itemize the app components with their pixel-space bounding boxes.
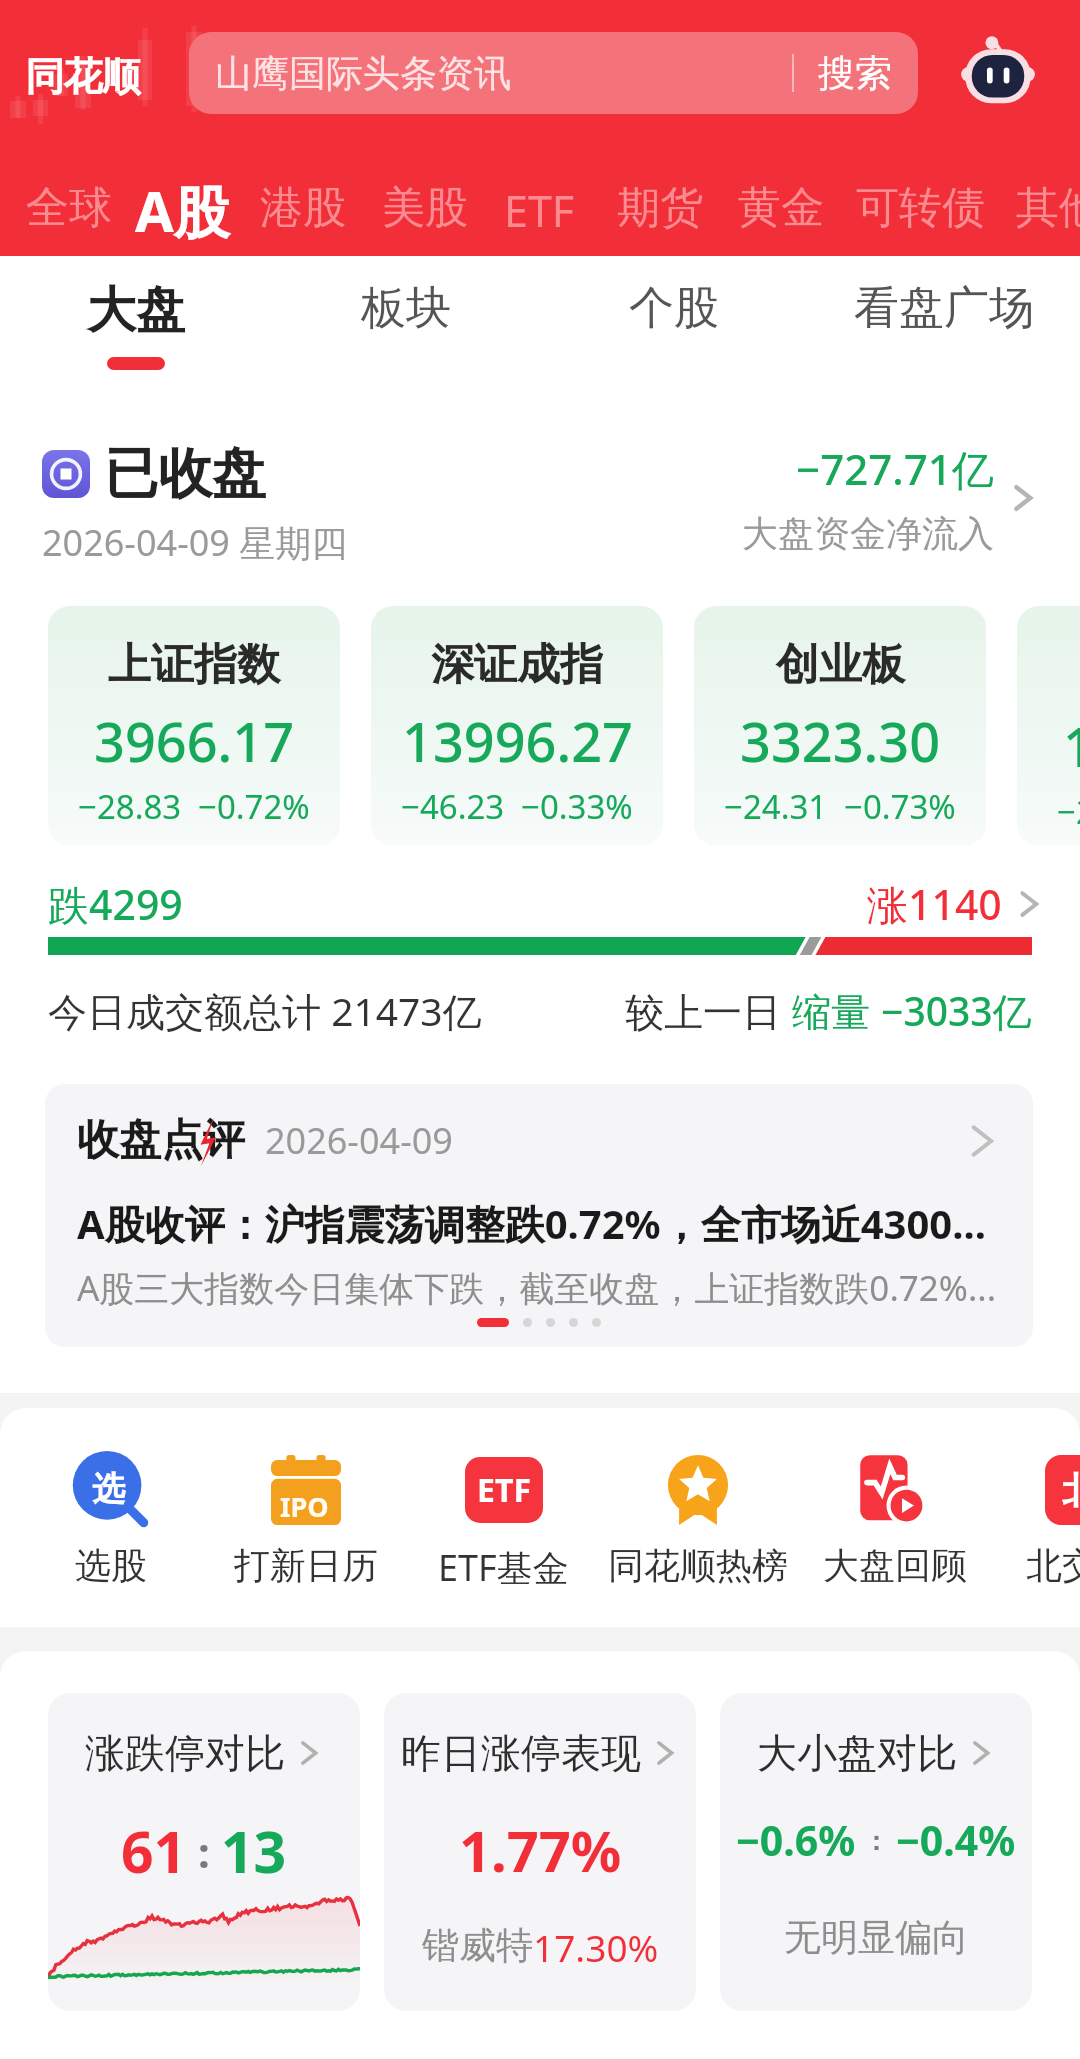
staticText: 大小盘对比: [757, 1728, 957, 1778]
staticText: ETF基金: [438, 1543, 569, 1592]
staticText: 2026-04-09: [265, 1116, 453, 1165]
staticText: −727.71亿: [796, 440, 994, 497]
staticText: 1288.32: [1063, 709, 1080, 783]
button[interactable]: 港股: [260, 181, 346, 235]
staticText: 缩量: [792, 984, 881, 1037]
staticText: A股: [135, 172, 230, 248]
button[interactable]: 大盘: [87, 280, 185, 370]
button[interactable]: 其他: [1016, 181, 1080, 235]
staticText: 同花顺: [26, 52, 140, 101]
staticText: 61: [121, 1812, 187, 1890]
staticText: 北交所: [1026, 1543, 1080, 1588]
button[interactable]: 上证指数: [48, 606, 340, 846]
button[interactable]: 大盘回顾: [785, 1451, 1005, 1588]
staticText: 板块: [361, 280, 451, 337]
button[interactable]: ETF: [504, 181, 575, 240]
button[interactable]: 板块: [361, 280, 451, 337]
button[interactable]: 选: [1, 1451, 221, 1588]
staticText: 跌4299: [48, 876, 183, 932]
staticText: 17.30%: [533, 1922, 659, 1972]
staticText: 北: [1062, 1468, 1080, 1513]
staticText: A股收评：沪指震荡调整跌0.72%，全市场近4300...: [77, 1196, 986, 1251]
staticText: −0.33%: [521, 784, 633, 829]
staticText: −24.31: [724, 784, 828, 829]
button[interactable]: 跌4299: [48, 876, 1044, 932]
staticText: 昨日涨停表现: [401, 1728, 641, 1778]
staticText: 同花顺热榜: [608, 1543, 788, 1588]
button[interactable]: AI assistant: [960, 34, 1036, 110]
button[interactable]: 黄金: [738, 181, 824, 235]
button[interactable]: 山鹰国际头条资讯: [189, 32, 918, 114]
staticText: 1.77%: [459, 1812, 622, 1888]
staticText: −2.85: [1057, 789, 1080, 834]
staticText: 13: [221, 1812, 287, 1890]
staticText: 大盘资金净流入: [742, 511, 994, 556]
staticText: 打新日历: [234, 1543, 378, 1588]
staticText: −28.83: [78, 784, 182, 829]
staticText: 搜索: [818, 50, 892, 97]
button[interactable]: IPO: [196, 1451, 416, 1588]
staticText: A股三大指数今日集体下跌，截至收盘，上证指数跌0.72%...: [77, 1264, 997, 1312]
staticText: ETF: [477, 1468, 531, 1512]
button[interactable]: 全球: [26, 181, 112, 235]
staticText: 其他: [1016, 181, 1080, 235]
button[interactable]: 期货: [617, 181, 703, 235]
staticText: 创业板: [776, 638, 905, 692]
staticText: 深证成指: [431, 638, 603, 692]
button[interactable]: 个股: [629, 280, 719, 337]
staticText: IPO: [280, 1488, 329, 1525]
staticText: 期货: [617, 181, 703, 235]
staticText: 大盘回顾: [823, 1543, 967, 1588]
staticText: ：: [856, 1822, 896, 1858]
button[interactable]: 美股: [382, 181, 468, 235]
button[interactable]: A股: [135, 172, 230, 248]
staticText: 3966.17: [94, 704, 295, 778]
staticText: 选: [92, 1468, 125, 1510]
staticText: 港股: [260, 181, 346, 235]
button[interactable]: 同花顺热榜: [588, 1451, 808, 1588]
staticText: 个股: [629, 280, 719, 337]
staticText: 黄金: [738, 181, 824, 235]
staticText: 锴威特: [422, 1922, 533, 1969]
staticText: 3323.30: [740, 704, 941, 778]
staticText: 山鹰国际头条资讯: [215, 50, 511, 97]
staticText: 较上一日: [625, 984, 792, 1037]
staticText: 无明显偏向: [784, 1914, 969, 1961]
staticText: 选股: [75, 1543, 147, 1588]
button[interactable]: 创业板: [694, 606, 986, 846]
button[interactable]: 收盘点评: [45, 1084, 1033, 1347]
button[interactable]: 大小盘对比: [720, 1693, 1032, 2011]
button[interactable]: 深证成指: [371, 606, 663, 846]
staticText: −0.72%: [198, 784, 310, 829]
button[interactable]: 科创50: [1017, 606, 1080, 846]
staticText: 2026-04-09 星期四: [42, 518, 348, 567]
button[interactable]: 昨日涨停表现: [384, 1693, 696, 2011]
staticText: −0.73%: [844, 784, 956, 829]
button[interactable]: 涨跌停对比: [48, 1693, 360, 2011]
button[interactable]: 可转债: [856, 181, 985, 235]
staticText: −46.23: [401, 784, 505, 829]
button[interactable]: 看盘广场: [854, 280, 1034, 337]
staticText: 收盘点评: [77, 1114, 245, 1167]
staticText: 上证指数: [108, 638, 280, 692]
staticText: 看盘广场: [854, 280, 1034, 337]
button[interactable]: 北: [970, 1451, 1080, 1588]
button[interactable]: ETF: [393, 1451, 613, 1592]
staticText: −3033亿: [881, 984, 1032, 1037]
staticText: :: [187, 1823, 221, 1880]
staticText: 今日成交额总计 21473亿: [48, 984, 482, 1037]
staticText: −0.4%: [896, 1812, 1016, 1868]
staticText: 可转债: [856, 181, 985, 235]
staticText: 13996.27: [402, 704, 633, 778]
staticText: 美股: [382, 181, 468, 235]
staticText: 大盘: [87, 280, 185, 342]
staticText: ETF: [504, 181, 575, 240]
staticText: 已收盘: [104, 440, 266, 508]
staticText: 全球: [26, 181, 112, 235]
staticText: −0.6%: [736, 1812, 856, 1868]
button[interactable]: −727.71亿: [742, 440, 1038, 556]
staticText: 涨1140: [867, 876, 1002, 932]
staticText: 涨跌停对比: [85, 1728, 285, 1778]
